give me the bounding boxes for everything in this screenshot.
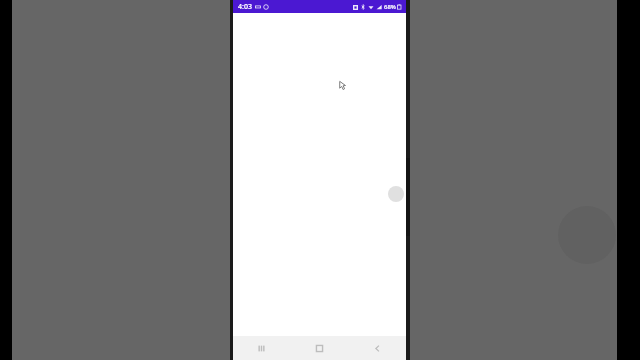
button[interactable]: Back <box>348 336 406 360</box>
button[interactable]: Home <box>290 336 348 360</box>
staticText: 4:03 <box>238 2 252 12</box>
button[interactable]: Recent apps <box>233 336 290 360</box>
staticText: 68% <box>384 3 396 11</box>
